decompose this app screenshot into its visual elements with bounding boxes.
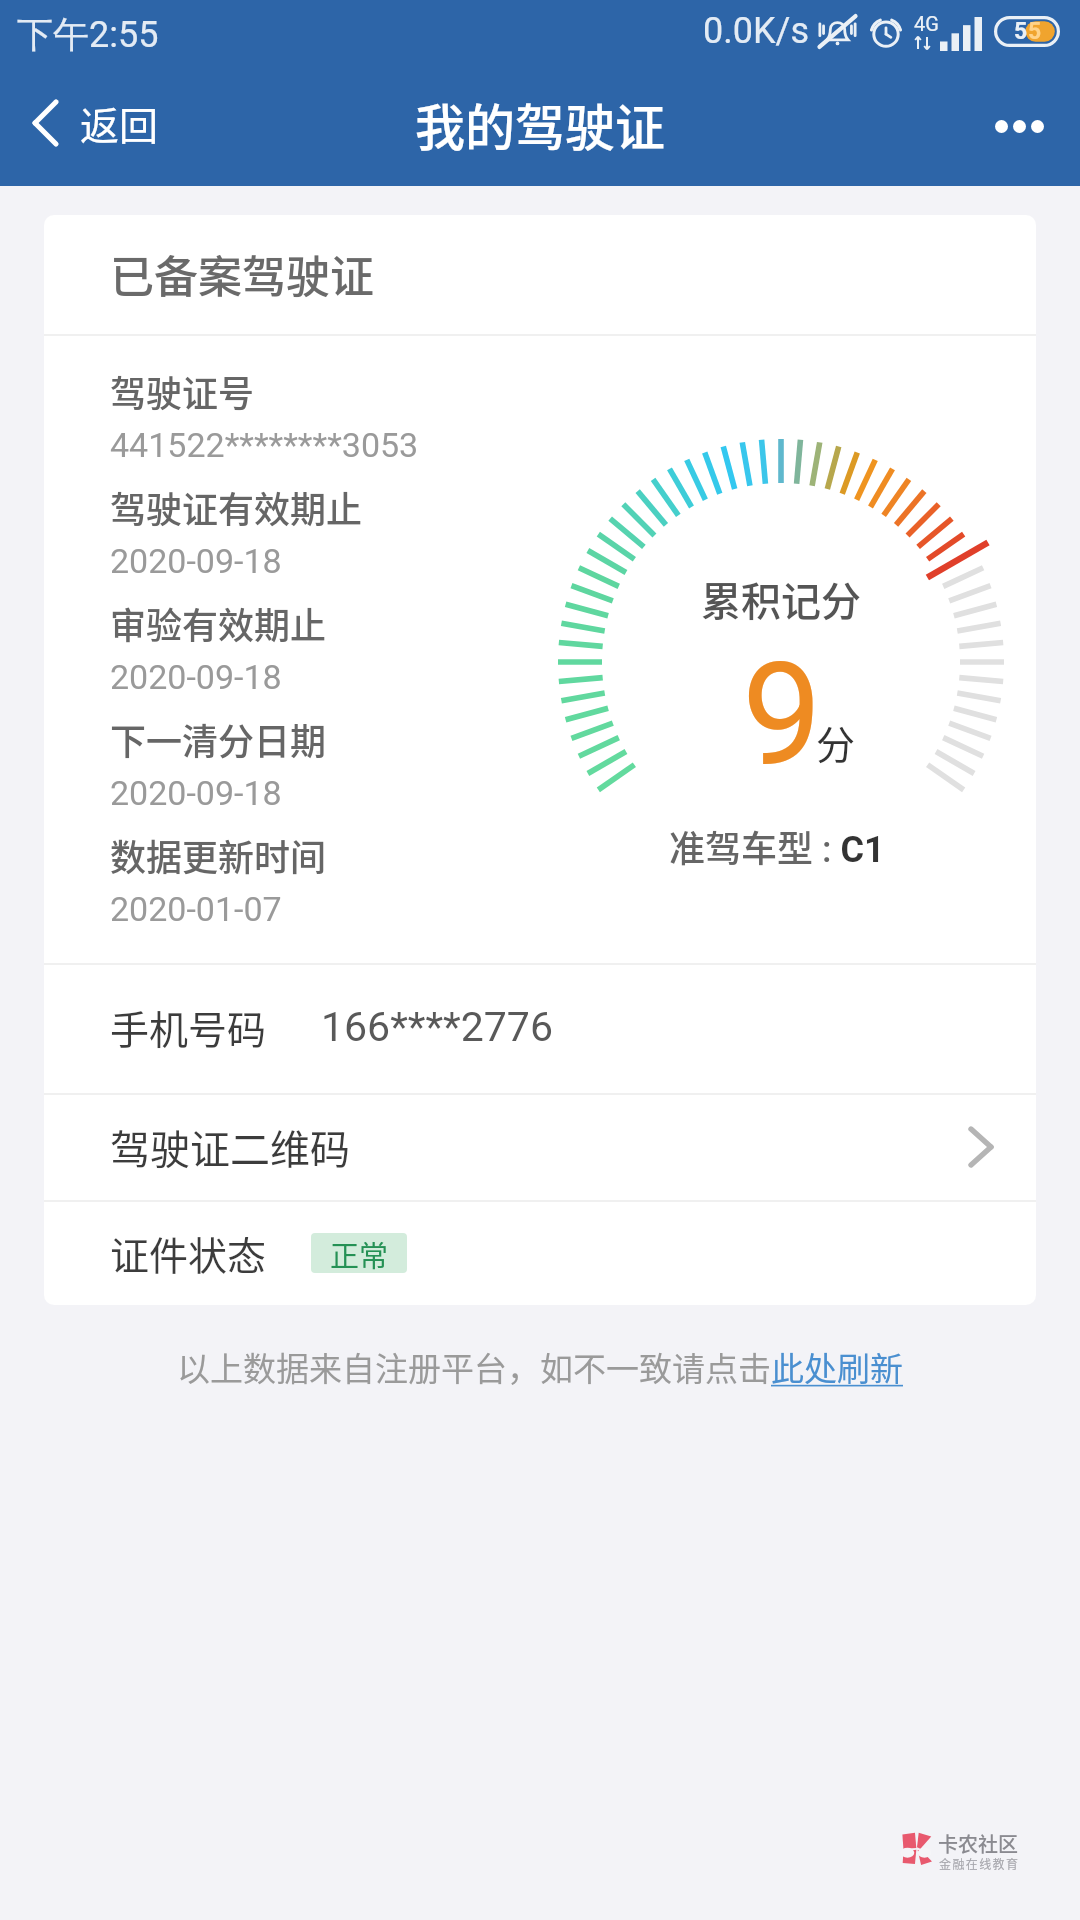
staticText: 166****2776 [321, 1003, 553, 1051]
button[interactable]: More options [972, 92, 1067, 160]
staticText: 数据更新时间 [110, 829, 327, 881]
staticText: 2020-01-07 [110, 889, 282, 929]
staticText: 9 [742, 632, 822, 798]
staticText: 5 [1014, 18, 1028, 45]
staticText: 2020-09-18 [110, 541, 282, 581]
button[interactable]: 返回 [18, 88, 169, 158]
staticText: 正常 [330, 1233, 389, 1273]
staticText: 驾驶证有效期止 [110, 481, 363, 533]
staticText: 手机号码 [110, 999, 267, 1055]
staticText: 驾驶证二维码 [110, 1118, 350, 1176]
staticText: 我的驾驶证 [415, 88, 665, 160]
staticText: 2020-09-18 [110, 773, 282, 813]
staticText: 累积记分 [701, 570, 861, 628]
staticText: 驾驶证号 [110, 365, 255, 417]
staticText: 卡农社区 [938, 1829, 1018, 1858]
staticText: 0.0K/s [703, 10, 809, 52]
staticText: 下一清分日期 [110, 713, 327, 765]
staticText: 已备案驾驶证 [110, 242, 374, 306]
staticText: 返回 [80, 95, 159, 151]
button[interactable]: 证件状态 [44, 1201, 1036, 1305]
staticText: 审验有效期止 [110, 597, 327, 649]
button[interactable]: 以上数据来自注册平台，如不一致请点击此处刷新 [177, 1343, 903, 1391]
staticText: 2020-09-18 [110, 657, 282, 697]
button[interactable]: 手机号码 [44, 964, 1036, 1089]
staticText: 441522********3053 [110, 425, 419, 465]
staticText: 分 [816, 714, 856, 770]
staticText: 准驾车型 : C1 [669, 820, 885, 872]
button[interactable]: 驾驶证二维码 [44, 1094, 1036, 1200]
staticText: 下午2:55 [17, 12, 159, 57]
staticText: 4G [914, 12, 939, 35]
staticText: 金融在线教育 [939, 1855, 1020, 1872]
staticText: 证件状态 [110, 1225, 267, 1281]
staticText: 5 [1028, 18, 1042, 45]
